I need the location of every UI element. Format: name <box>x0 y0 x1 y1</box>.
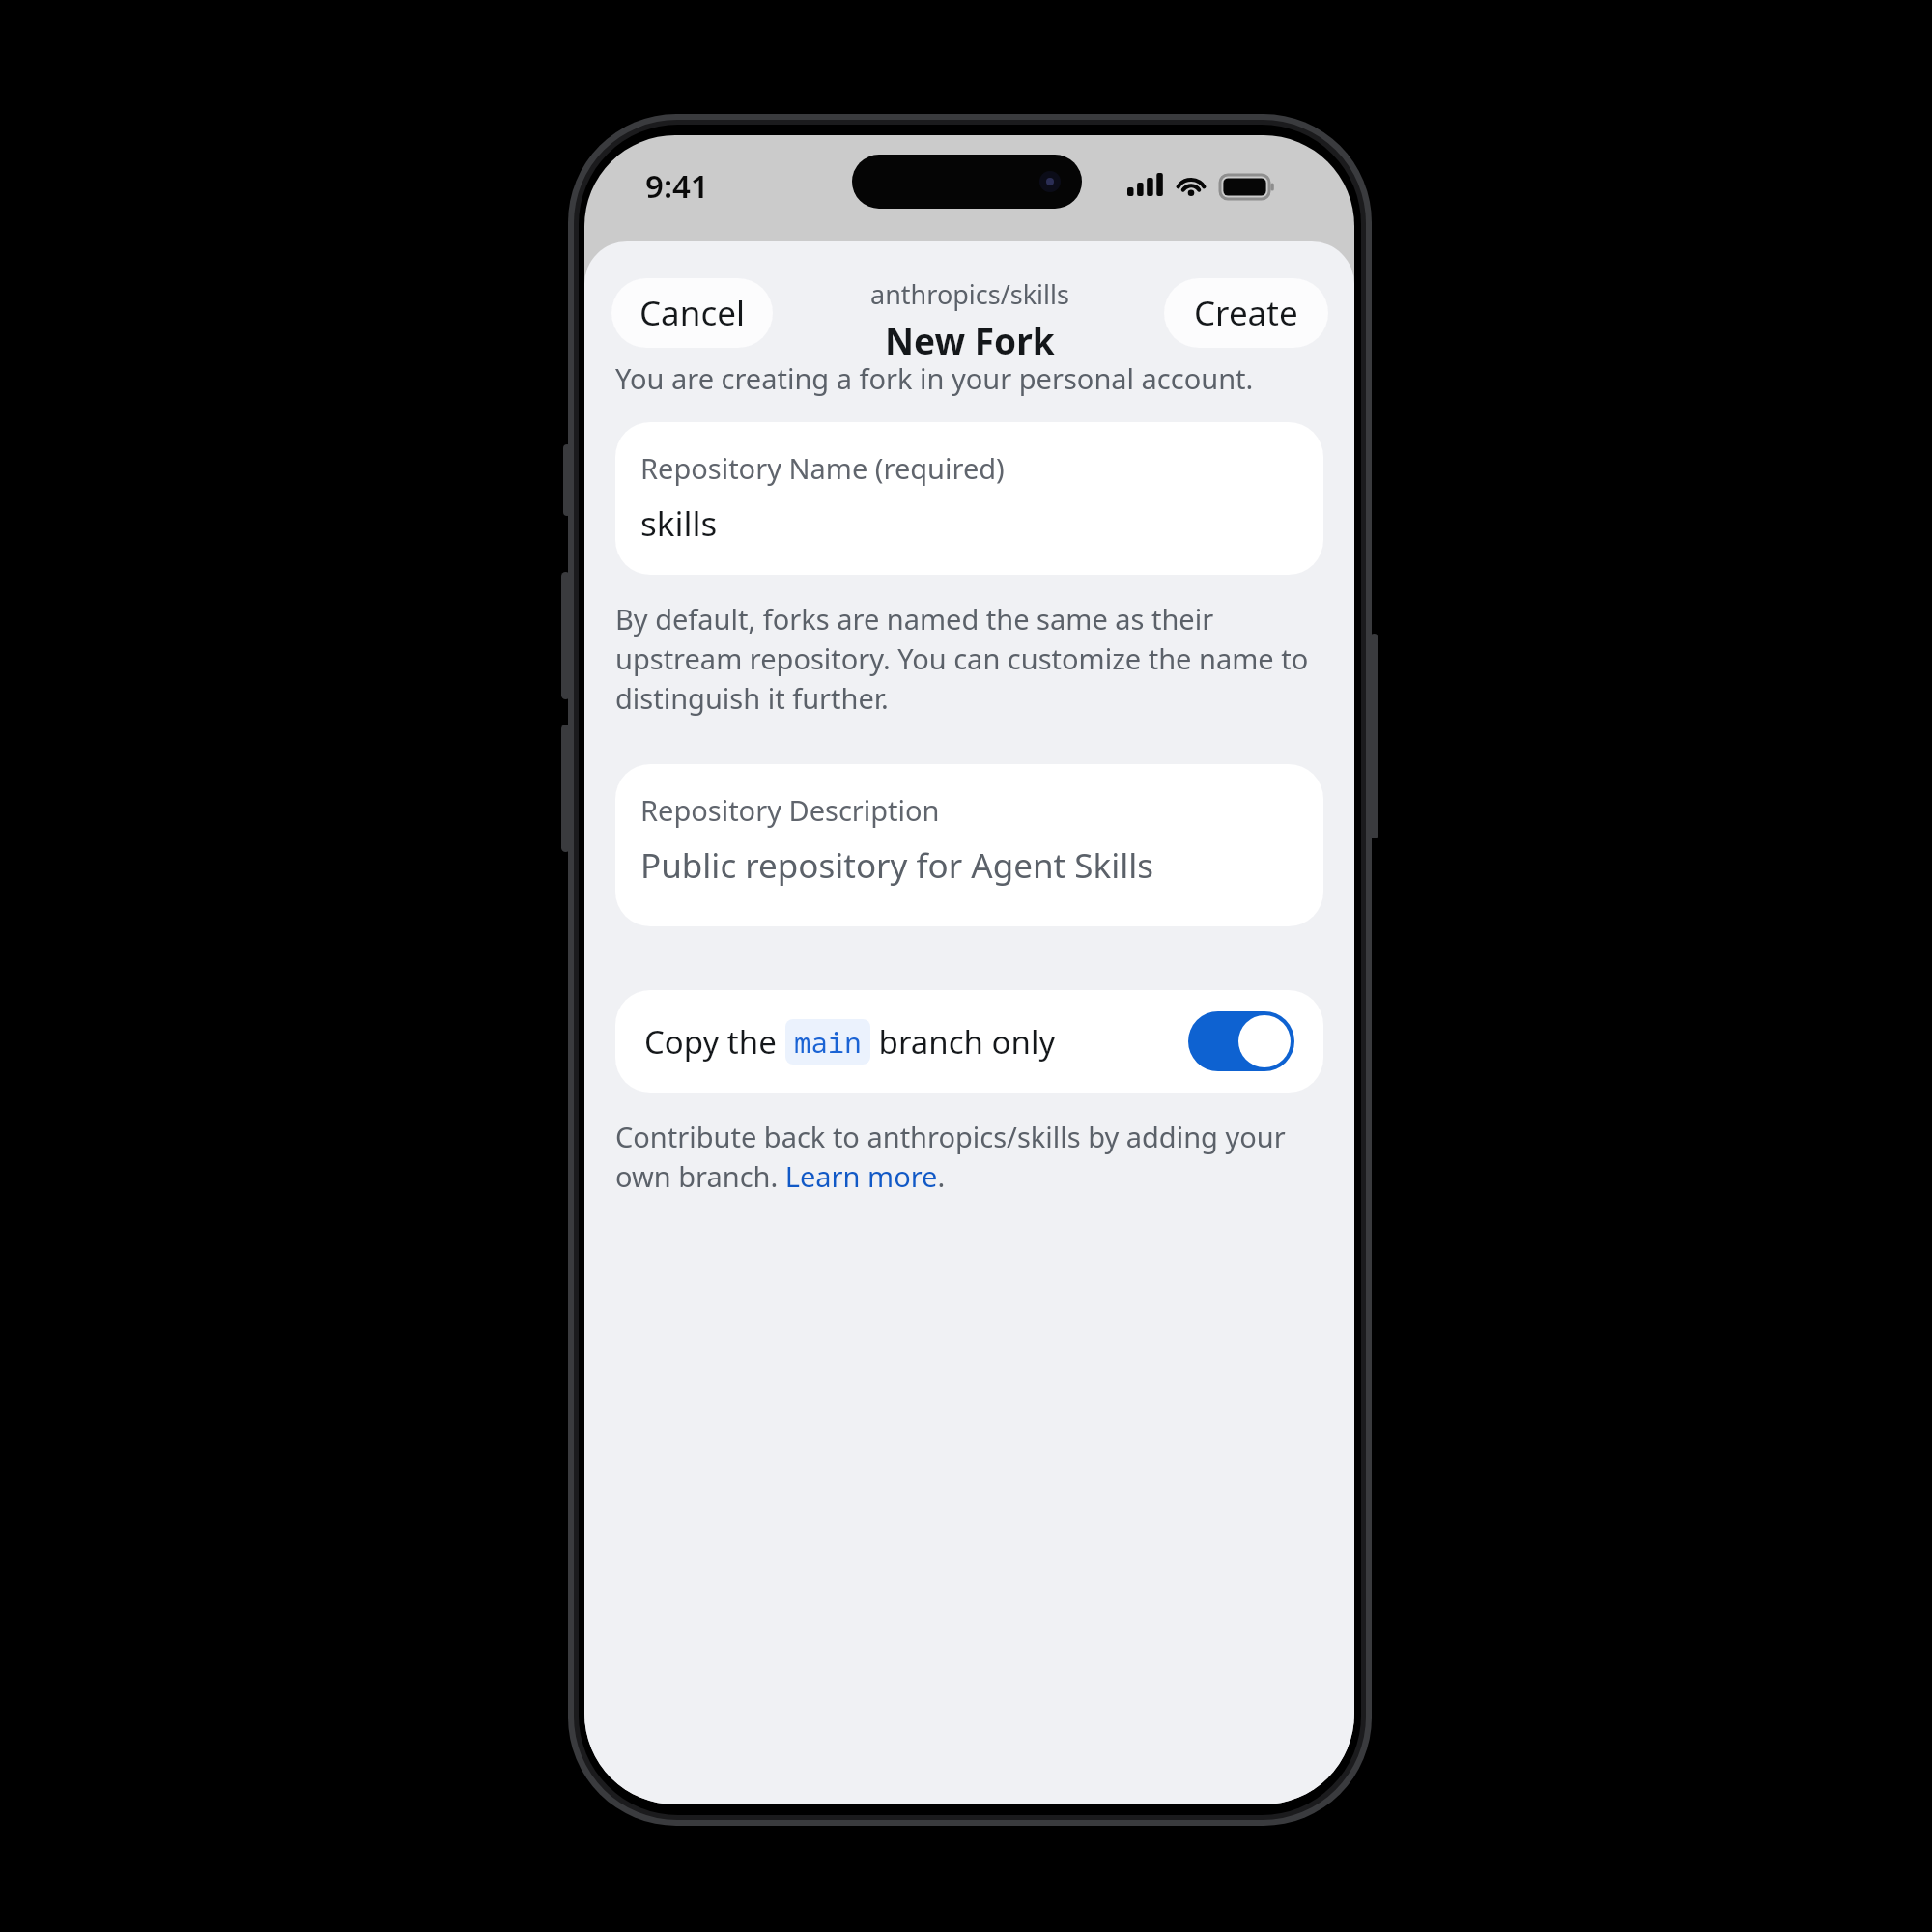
staticText: anthropics/skills <box>870 276 1069 312</box>
staticText: Repository Description <box>640 791 940 829</box>
button[interactable]: Repository Name (required) <box>615 422 1323 575</box>
staticText: 9:41 <box>645 164 709 208</box>
staticText: New Fork <box>885 316 1055 364</box>
staticText: Cancel <box>639 290 745 336</box>
staticText: You are creating a fork in your personal… <box>615 359 1254 397</box>
staticText: skills <box>640 500 718 547</box>
staticText: main <box>794 1023 862 1061</box>
staticText: Copy the <box>644 1020 785 1064</box>
button[interactable]: Copy the main branch only toggle, on <box>1188 1011 1294 1071</box>
button[interactable]: Create <box>1164 278 1328 348</box>
button[interactable]: Contribute back to anthropics/skills by … <box>615 1118 1318 1196</box>
staticText: Repository Name (required) <box>640 449 1005 487</box>
staticText: Create <box>1194 290 1298 336</box>
button[interactable]: Copy the <box>615 990 1323 1093</box>
button[interactable]: Repository Description <box>615 764 1323 926</box>
staticText: Public repository for Agent Skills <box>640 842 1154 889</box>
staticText: By default, forks are named the same as … <box>615 600 1318 718</box>
staticText: branch only <box>870 1020 1056 1064</box>
button[interactable]: Cancel <box>611 278 773 348</box>
